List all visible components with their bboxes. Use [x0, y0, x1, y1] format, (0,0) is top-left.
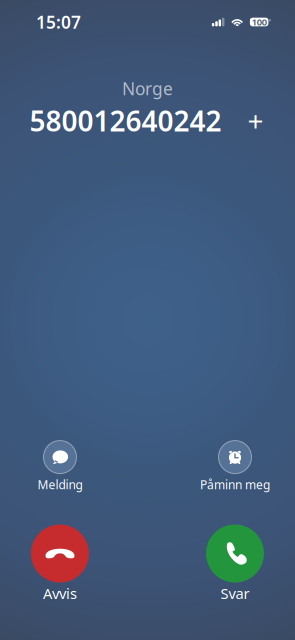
staticText: Melding: [37, 477, 82, 492]
button[interactable]: Svar: [175, 524, 295, 602]
staticText: 100: [252, 16, 267, 28]
staticText: 15:07: [36, 10, 81, 33]
staticText: 580012640242: [29, 102, 221, 139]
staticText: Norge: [122, 77, 173, 100]
staticText: Svar: [220, 583, 249, 603]
button[interactable]: Avvis: [0, 524, 120, 602]
staticText: Påminn meg: [200, 477, 270, 492]
button[interactable]: Melding: [0, 441, 120, 489]
button[interactable]: Legg til samtale: [239, 105, 271, 137]
staticText: Avvis: [43, 583, 77, 603]
staticText: +: [247, 102, 263, 139]
button[interactable]: Påminn meg: [175, 441, 295, 489]
